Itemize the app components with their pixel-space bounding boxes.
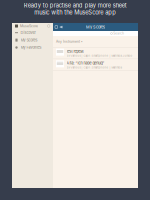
staticText: by Various | Caph Smartphone | Marimba J… xyxy=(66,54,132,57)
button[interactable]: My Scores xyxy=(12,36,53,44)
button[interactable]: Discover xyxy=(12,29,53,36)
staticText: My Scores xyxy=(20,38,37,42)
staticText: My Favorites xyxy=(20,45,41,50)
staticText: by Various | Caph Smartphone | Marimba xyxy=(66,66,121,69)
staticText: Discover xyxy=(20,30,35,35)
button[interactable]: Aria: “Ich habe genug” xyxy=(53,59,138,71)
button[interactable]: Share xyxy=(60,26,63,28)
button[interactable]: test repeat xyxy=(53,47,138,59)
staticText: My Scores xyxy=(86,25,105,29)
staticText: MuseScore xyxy=(20,24,38,28)
button[interactable]: Search xyxy=(111,32,124,35)
button[interactable]: My Favorites xyxy=(12,44,53,51)
staticText: Ready to practise and play more sheet mu… xyxy=(23,2,126,16)
staticText: test repeat xyxy=(66,49,83,54)
staticText: Any Instrument xyxy=(56,40,80,43)
staticText: ▾ xyxy=(81,40,82,43)
staticText: Aria: “Ich habe genug” xyxy=(66,61,104,65)
button[interactable]: New score xyxy=(55,26,58,28)
staticText: Search xyxy=(113,32,124,35)
